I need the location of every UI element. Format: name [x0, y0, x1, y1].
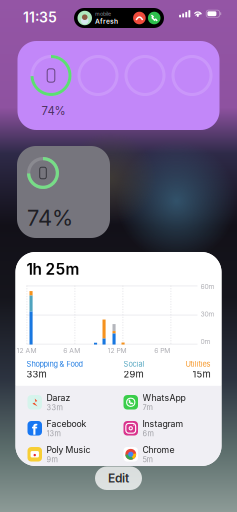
staticText: 12 PM — [107, 347, 126, 355]
staticText: 1h 25m — [26, 260, 79, 279]
staticText: Chrome — [142, 445, 174, 455]
staticText: 13m — [46, 429, 60, 438]
button[interactable]: Edit — [95, 466, 142, 490]
staticText: 0m — [200, 337, 210, 346]
staticText: f — [32, 421, 38, 438]
staticText: 33m — [26, 368, 46, 380]
button[interactable]: WhatsApp — [123, 392, 211, 413]
staticText: Poly Music — [46, 445, 90, 455]
staticText: Edit — [108, 471, 129, 485]
staticText: 74% — [41, 104, 65, 118]
staticText: Social — [123, 360, 144, 368]
staticText: 7m — [142, 403, 152, 412]
staticText: 74% — [27, 204, 73, 231]
button[interactable]: Poly Music — [27, 444, 115, 465]
staticText: 9m — [46, 455, 57, 464]
staticText: 33m — [46, 403, 62, 412]
staticText: 6 AM — [63, 347, 80, 355]
button[interactable]: Daraz — [27, 392, 115, 413]
staticText: 12 AM — [16, 347, 36, 355]
staticText: Afresh — [95, 17, 118, 25]
staticText: Utilities — [185, 360, 210, 368]
staticText: Facebook — [46, 419, 86, 429]
staticText: 30m — [200, 310, 214, 318]
button[interactable]: Instagram — [123, 418, 211, 439]
button[interactable]: Chrome — [123, 444, 211, 465]
staticText: 60m — [200, 283, 214, 291]
staticText: 15m — [192, 368, 210, 380]
staticText: 11:35 — [23, 9, 57, 26]
staticText: 29m — [123, 368, 143, 380]
staticText: WhatsApp — [142, 393, 185, 403]
staticText: 6m — [142, 429, 153, 438]
staticText: Shopping & Food — [26, 360, 82, 368]
staticText: 6 PM — [154, 347, 170, 355]
button[interactable]: f — [27, 418, 115, 439]
staticText: Daraz — [46, 393, 70, 403]
staticText: mobile — [95, 11, 111, 17]
staticText: 5m — [142, 455, 152, 464]
staticText: Instagram — [142, 419, 183, 429]
